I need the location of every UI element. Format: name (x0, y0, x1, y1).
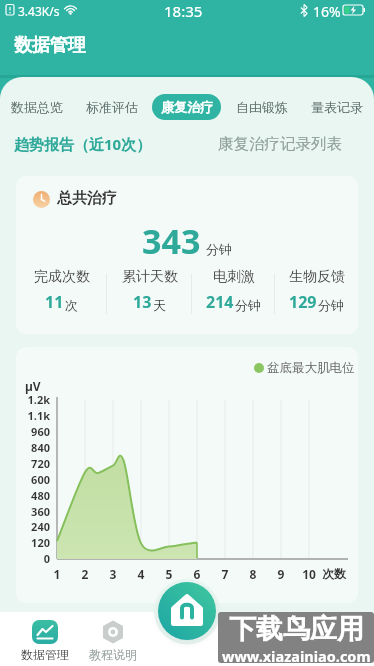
staticText: 8 (243, 566, 263, 582)
staticText: 129 (289, 291, 317, 313)
button[interactable]: 标准评估 (74, 91, 149, 123)
staticText: 343 (142, 218, 201, 264)
staticText: 720 (20, 456, 50, 471)
staticText: 6 (187, 566, 207, 582)
staticText: 0 (20, 551, 50, 566)
staticText: 11 (45, 291, 64, 313)
staticText: 360 (20, 504, 50, 519)
button[interactable]: 康复治疗记录列表 (218, 134, 342, 154)
staticText: 7 (215, 566, 235, 582)
staticText: 9 (271, 566, 291, 582)
staticText: 累计天数 (122, 268, 178, 286)
button[interactable]: 趋势报告（近10次） (14, 134, 152, 154)
button[interactable]: 教程说明 (78, 619, 148, 665)
staticText: 18:35 (164, 1, 203, 21)
staticText: 下载鸟应用 (229, 612, 364, 646)
staticText: 康复治疗 (161, 99, 213, 115)
staticText: 960 (20, 424, 50, 439)
button[interactable] (158, 582, 216, 640)
staticText: 2 (75, 566, 95, 582)
staticText: µV (25, 378, 41, 394)
staticText: 总共治疗 (57, 189, 117, 208)
staticText: 分钟 (206, 241, 232, 257)
staticText: 3.43K/s (18, 3, 60, 19)
staticText: 数据总览 (11, 99, 63, 115)
staticText: 次数 (322, 566, 346, 581)
staticText: 天 (153, 297, 166, 313)
staticText: 1 (47, 566, 67, 582)
staticText: 1.1k (20, 408, 50, 423)
staticText: 电刺激 (213, 268, 255, 286)
staticText: 生物反馈 (289, 268, 345, 286)
staticText: 次 (65, 297, 78, 313)
staticText: 840 (20, 440, 50, 455)
staticText: 自由锻炼 (236, 99, 288, 115)
staticText: 10 (299, 566, 319, 582)
staticText: 4 (131, 566, 151, 582)
staticText: 480 (20, 488, 50, 503)
staticText: 600 (20, 472, 50, 487)
staticText: 240 (20, 519, 50, 534)
button[interactable]: 量表记录 (299, 91, 374, 123)
button[interactable]: 数据管理 (10, 619, 80, 665)
staticText: 5 (159, 566, 179, 582)
staticText: 16% (313, 2, 341, 21)
staticText: 数据管理 (21, 647, 69, 662)
staticText: 完成次数 (34, 268, 90, 286)
button[interactable]: 数据总览 (0, 91, 74, 123)
staticText: 214 (206, 291, 234, 313)
button[interactable]: 康复治疗 (149, 91, 224, 123)
staticText: 标准评估 (86, 99, 138, 115)
staticText: 量表记录 (311, 99, 363, 115)
staticText: 分钟 (318, 297, 344, 313)
staticText: 1.2k (20, 392, 50, 407)
staticText: 3 (103, 566, 123, 582)
staticText: 数据管理 (14, 34, 86, 57)
staticText: 分钟 (235, 297, 261, 313)
staticText: 120 (20, 535, 50, 550)
staticText: www.xiazainiao.com (222, 646, 371, 663)
staticText: 盆底最大肌电位 (267, 360, 355, 376)
button[interactable]: 自由锻炼 (224, 91, 299, 123)
staticText: 13 (133, 291, 152, 313)
staticText: 教程说明 (89, 647, 137, 662)
